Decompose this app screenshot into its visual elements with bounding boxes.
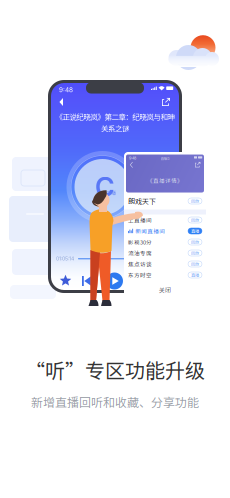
staticText: 回放 <box>191 250 199 256</box>
button[interactable]: 东方时空 <box>124 269 206 280</box>
staticText: 影视30分 <box>128 238 152 246</box>
staticText: 关系之谜 <box>101 123 129 134</box>
staticText: 上直播间 <box>128 216 152 224</box>
staticText: 直播中 <box>160 156 169 161</box>
button[interactable]: 新闻直播间 <box>124 225 206 236</box>
staticText: 焦点访谈 <box>128 260 152 268</box>
staticText: 直播 <box>191 272 199 278</box>
staticText: 回放 <box>191 217 199 223</box>
button[interactable]: 关闭 <box>124 283 206 297</box>
staticText: 9:48 <box>129 156 136 160</box>
staticText: C <box>95 171 115 203</box>
staticText: 新闻直播间 <box>135 227 165 235</box>
staticText: 回放 <box>191 261 199 267</box>
staticText: “听”专区功能升级 <box>25 355 205 384</box>
staticText: 东方时空 <box>128 271 152 279</box>
button[interactable]: Favourite <box>59 274 71 287</box>
button[interactable]: 上直播间 <box>124 214 206 225</box>
staticText: 关闭 <box>159 286 171 294</box>
button[interactable]: Play <box>106 272 123 289</box>
button[interactable]: 影视30分 <box>124 236 206 247</box>
button[interactable]: Share <box>162 98 171 107</box>
staticText: 回放 <box>191 198 199 204</box>
staticText: 乐享广播 <box>96 189 116 196</box>
staticText: 新增直播回听和收藏、分享功能 <box>31 393 199 410</box>
button[interactable]: Previous track <box>82 276 92 286</box>
button[interactable]: 朗戏天下 <box>124 192 206 209</box>
staticText: 9:48 <box>59 86 73 94</box>
staticText: 《直播详情》 <box>147 176 183 185</box>
staticText: 01:05:14 <box>56 255 74 262</box>
button[interactable]: 流油专席 <box>124 247 206 258</box>
staticText: 流油专席 <box>128 249 152 257</box>
button[interactable]: 焦点访谈 <box>124 258 206 269</box>
staticText: 朗戏天下 <box>128 196 156 206</box>
staticText: 回放 <box>191 239 199 245</box>
staticText: 直播 <box>191 228 199 234</box>
staticText: 《正说纪晓岚》第二章：纪晓岚与和珅 <box>55 111 174 122</box>
